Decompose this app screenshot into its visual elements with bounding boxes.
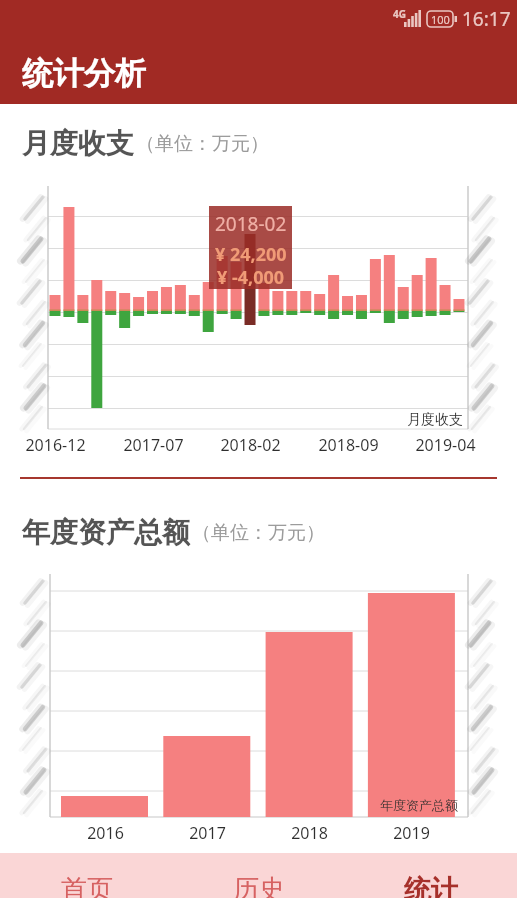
staticText: 16:17 [462,6,511,32]
staticText: 年度资产总额 [380,797,458,813]
staticText: （单位：万元） [192,521,325,545]
staticText: 2018-02 [215,211,287,237]
staticText: 首页 [61,873,113,898]
staticText: 2016 [87,822,124,844]
staticText: 2017-07 [123,434,184,456]
staticText: ¥ 24,200 [215,242,287,267]
staticText: 4G [393,7,406,21]
staticText: 2018 [291,822,328,844]
button[interactable]: 首页 [0,853,173,898]
staticText: 2016-12 [25,434,86,456]
staticText: 100 [431,12,450,27]
staticText: 2018-02 [220,434,281,456]
staticText: （单位：万元） [136,132,269,156]
staticText: 2018-09 [318,434,379,456]
button[interactable]: 统计分析 [0,0,517,104]
staticText: 统计 [404,873,458,898]
staticText: 统计分析 [22,54,146,93]
staticText: 2019-04 [415,434,476,456]
staticText: 2019 [393,822,430,844]
staticText: 月度收支 [407,411,463,429]
staticText: 2017 [189,822,226,844]
button[interactable]: 统计 [345,853,517,898]
staticText: 月度收支 [22,126,134,161]
staticText: ¥ -4,000 [217,265,285,290]
staticText: 年度资产总额 [22,515,190,550]
staticText: 历史 [233,873,285,898]
button[interactable]: 历史 [173,853,345,898]
